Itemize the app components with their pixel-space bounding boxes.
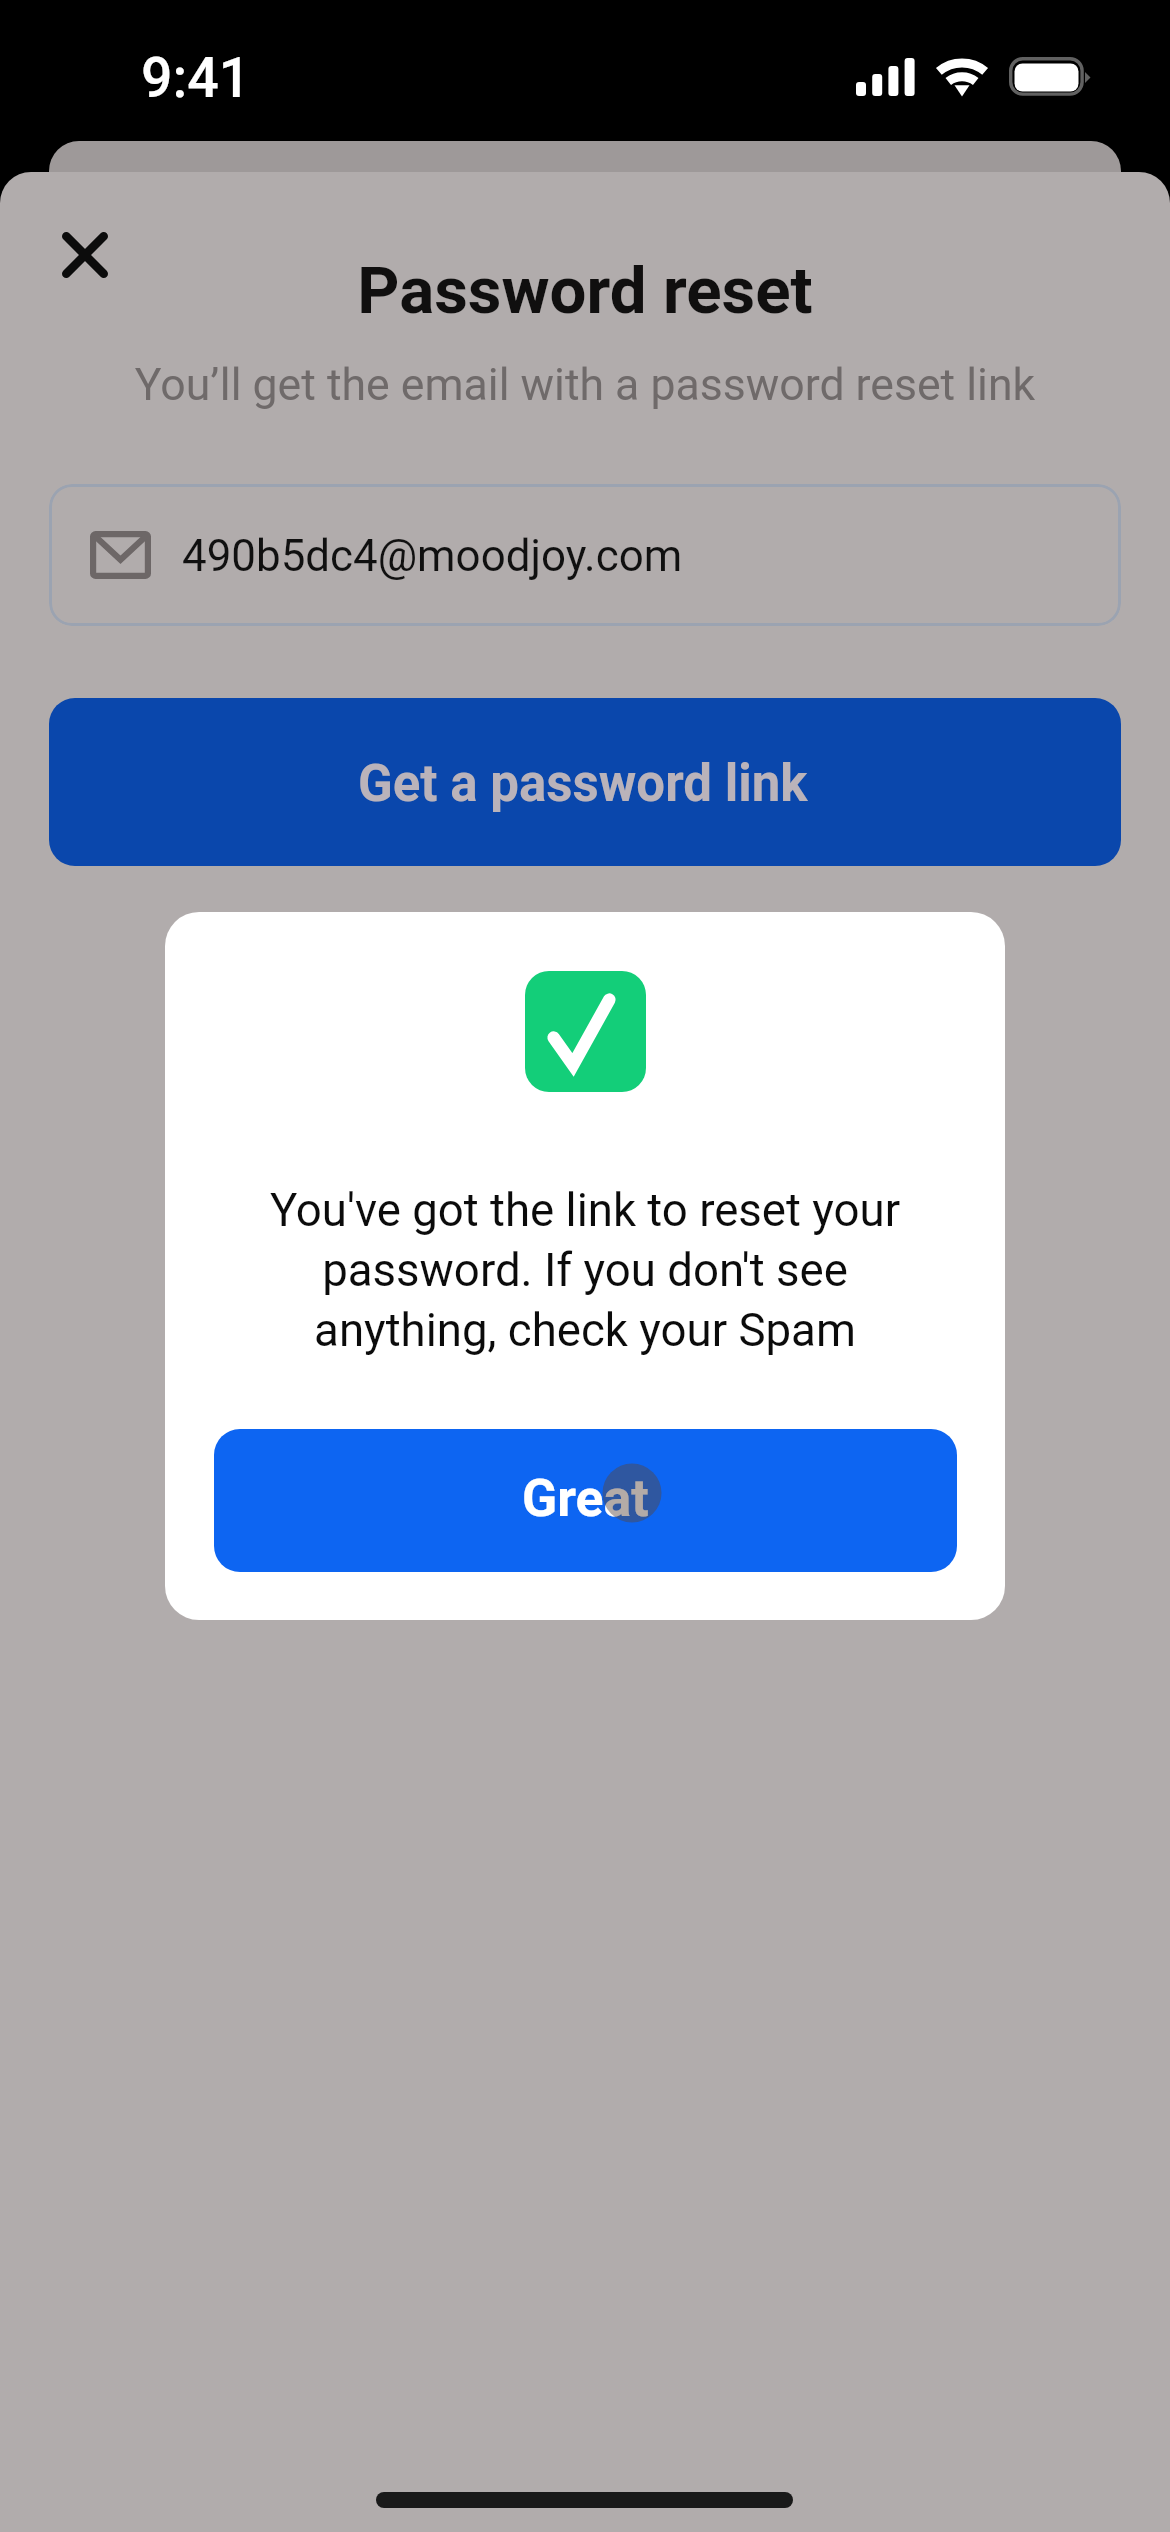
button[interactable]: 490b5dc4@moodjoy.com	[49, 484, 1121, 626]
staticText: 9:41	[141, 46, 251, 111]
staticText: You’ll get the email with a password res…	[0, 359, 1170, 411]
staticText: 490b5dc4@moodjoy.com	[182, 530, 683, 581]
button[interactable]: Get a password link	[49, 698, 1121, 866]
button[interactable]: Great	[214, 1429, 957, 1572]
staticText: Get a password link	[358, 754, 808, 814]
staticText: You've got the link to reset your passwo…	[165, 1184, 1005, 1358]
staticText: Password reset	[0, 252, 1170, 329]
button[interactable]: Close	[37, 207, 133, 303]
staticText: Great	[522, 1468, 649, 1529]
